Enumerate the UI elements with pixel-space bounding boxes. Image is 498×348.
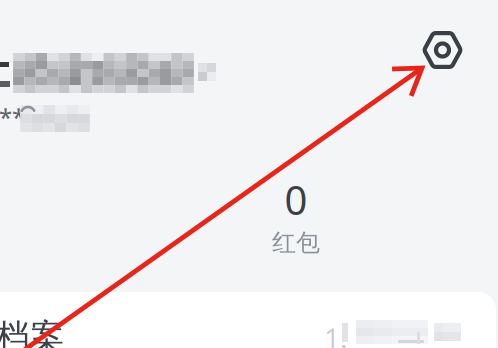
staticText: 0 <box>284 173 307 226</box>
button[interactable]: ** <box>0 45 250 141</box>
staticText: ** <box>0 101 25 133</box>
staticText: 红包 <box>272 228 320 257</box>
button[interactable]: Settings <box>415 24 470 76</box>
staticText: 档案 <box>0 316 65 348</box>
button[interactable]: 档案 <box>0 292 478 348</box>
staticText: 1. <box>324 319 348 348</box>
